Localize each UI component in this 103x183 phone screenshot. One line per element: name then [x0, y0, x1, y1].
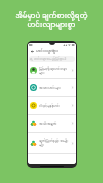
staticText: အသားဟင်းများ: [39, 86, 71, 90]
staticText: ငါးနှင့်ပုစွန်ဟင်း: [39, 104, 71, 108]
button[interactable]: မြန်မာ့ရိုးရာဟင်းလျာ များ: [28, 63, 76, 78]
staticText: ချက်ပြုတ်နည်း အမျိုး မျိုး: [39, 139, 71, 147]
staticText: ဟင်းလျာများ: [36, 49, 59, 54]
staticText: မြန်မာ့ရိုးရာဟင်းလျာ များ: [39, 67, 71, 75]
button[interactable]: Back: [30, 49, 35, 54]
staticText: အသီးအရွက်: [39, 122, 71, 126]
button[interactable]: ငါးနှင့်ပုစွန်ဟင်း: [28, 97, 76, 114]
button[interactable]: အသီးအရွက်: [28, 115, 76, 132]
button[interactable]: အသားဟင်းများ: [28, 79, 76, 96]
button[interactable]: ဟင်းလျာအမည်ဖြင့်ရှာပါ: [29, 56, 75, 62]
staticText: အိမ်မှာပဲ ချက်စားလို့ရတဲ့ ဟင်းလျာများစွာ: [15, 12, 88, 30]
button[interactable]: ချက်ပြုတ်နည်း အမျိုး မျိုး: [28, 133, 76, 153]
staticText: ဟင်းလျာအမည်ဖြင့်ရှာပါ: [34, 57, 67, 61]
